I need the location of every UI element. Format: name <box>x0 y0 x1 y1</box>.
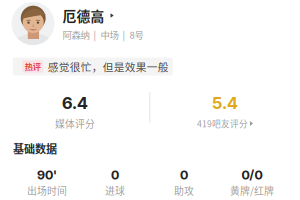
staticText: 基础数据 <box>13 140 57 156</box>
staticText: 5.4 <box>212 93 238 113</box>
staticText: 感觉很忙，但是效果一般 <box>48 59 169 74</box>
button[interactable]: 5.4 <box>0 0 300 200</box>
staticText: 6.4 <box>62 93 88 113</box>
staticText: 黄牌/红牌 <box>230 183 274 198</box>
staticText: 0 <box>180 167 188 183</box>
staticText: 厄德高 <box>62 6 104 25</box>
staticText: 出场时间 <box>27 183 67 198</box>
staticText: 90' <box>37 167 57 183</box>
staticText: 419吧友评分 <box>197 117 248 130</box>
staticText: 0 <box>111 167 119 183</box>
staticText: 0/0 <box>241 167 262 183</box>
staticText: 热评 <box>25 60 41 72</box>
staticText: 助攻 <box>174 183 194 198</box>
button[interactable]: 厄德高 <box>0 0 300 200</box>
staticText: 阿森纳 | 中场 | 8号 <box>62 28 143 41</box>
staticText: 媒体评分 <box>55 116 95 131</box>
staticText: 进球 <box>105 183 125 198</box>
